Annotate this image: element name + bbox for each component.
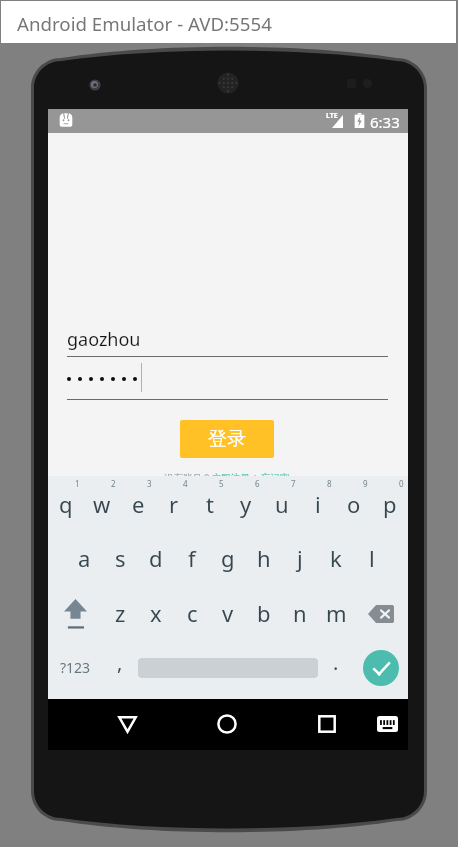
button[interactable]: j (282, 531, 318, 586)
button[interactable]: h (246, 531, 282, 586)
button[interactable]: b (246, 586, 282, 641)
staticText: 6 (255, 478, 260, 489)
button[interactable]: ?123 (48, 641, 102, 696)
staticText: 4 (183, 478, 188, 489)
staticText: ?123 (60, 658, 91, 677)
button[interactable]: 4 (156, 476, 192, 531)
button[interactable]: 2 (84, 476, 120, 531)
button[interactable]: Show keyboard (372, 709, 402, 739)
staticText: Android Emulator - AVD:5554 (17, 11, 272, 36)
staticText: b (257, 598, 271, 628)
button[interactable]: 没有账号？ (164, 472, 295, 488)
staticText: x (150, 598, 162, 628)
button[interactable]: , (102, 641, 138, 696)
staticText: . (333, 649, 339, 676)
button[interactable]: 9 (336, 476, 372, 531)
staticText: 9 (363, 478, 368, 489)
staticText: g (221, 543, 235, 573)
staticText: o (347, 489, 361, 519)
staticText: i (315, 489, 321, 519)
staticText: d (149, 543, 163, 573)
button[interactable]: a (66, 531, 102, 586)
staticText: m (326, 598, 347, 628)
button[interactable]: 3 (120, 476, 156, 531)
button[interactable]: Space (138, 641, 318, 696)
staticText: v (222, 598, 234, 628)
button[interactable]: n (282, 586, 318, 641)
button[interactable]: s (102, 531, 138, 586)
button[interactable]: Recents (312, 709, 342, 739)
button[interactable]: 6 (228, 476, 264, 531)
staticText: r (169, 489, 179, 519)
button[interactable]: g (210, 531, 246, 586)
button[interactable]: 0 (372, 476, 408, 531)
button[interactable]: Shift (48, 586, 102, 641)
staticText: gaozhou (67, 327, 141, 352)
button[interactable]: v (210, 586, 246, 641)
staticText: w (93, 489, 111, 519)
button[interactable]: 5 (192, 476, 228, 531)
staticText: n (293, 598, 307, 628)
button[interactable]: Home (212, 709, 242, 739)
button[interactable]: c (174, 586, 210, 641)
staticText: p (383, 489, 397, 519)
staticText: | (250, 472, 261, 485)
staticText: 5 (219, 478, 224, 489)
staticText: , (117, 649, 123, 676)
button[interactable]: Backspace (354, 586, 408, 641)
button[interactable]: f (174, 531, 210, 586)
staticText: 没有账号？ (164, 472, 212, 484)
staticText: 8 (327, 478, 332, 489)
staticText: a (78, 543, 91, 573)
staticText: 立即注册 (212, 472, 250, 484)
button[interactable]: z (102, 586, 138, 641)
staticText: c (187, 598, 198, 628)
button[interactable]: 1 (48, 476, 84, 531)
staticText: z (115, 598, 126, 628)
button[interactable]: k (318, 531, 354, 586)
staticText: j (297, 543, 303, 573)
staticText: 2 (111, 478, 116, 489)
staticText: t (206, 489, 214, 519)
button[interactable]: 登录 (180, 420, 274, 458)
staticText: 1 (75, 478, 80, 489)
staticText: 7 (291, 478, 296, 489)
button[interactable]: x (138, 586, 174, 641)
button[interactable]: . (318, 641, 354, 696)
staticText: f (188, 543, 196, 573)
staticText: s (115, 543, 126, 573)
button[interactable]: l (354, 531, 390, 586)
staticText: LTE (326, 111, 338, 121)
staticText: y (240, 489, 252, 519)
staticText: 0 (399, 478, 404, 489)
button[interactable]: 7 (264, 476, 300, 531)
staticText: q (59, 489, 73, 519)
button[interactable]: m (318, 586, 354, 641)
staticText: l (369, 543, 375, 573)
staticText: k (330, 543, 342, 573)
staticText: h (257, 543, 271, 573)
staticText: 3 (147, 478, 152, 489)
staticText: 6:33 (370, 112, 400, 132)
button[interactable]: d (138, 531, 174, 586)
staticText: 忘记密码 (261, 472, 295, 488)
button[interactable]: 8 (300, 476, 336, 531)
staticText: 登录 (208, 427, 246, 451)
staticText: u (275, 489, 289, 519)
button[interactable]: Back (112, 709, 142, 739)
button[interactable]: Enter (354, 641, 408, 696)
staticText: e (132, 489, 145, 519)
